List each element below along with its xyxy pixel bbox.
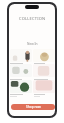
staticText: Shop now [26,105,41,109]
staticText: COLLECTION [19,16,46,21]
button[interactable] [10,49,32,62]
button[interactable] [10,64,32,77]
button[interactable] [33,80,55,93]
button[interactable] [33,64,55,77]
button[interactable]: Shop now [11,104,55,110]
staticText: New In [27,42,38,46]
button[interactable] [33,49,55,62]
button[interactable] [10,80,32,93]
button[interactable]: COLLECTION [9,15,55,21]
